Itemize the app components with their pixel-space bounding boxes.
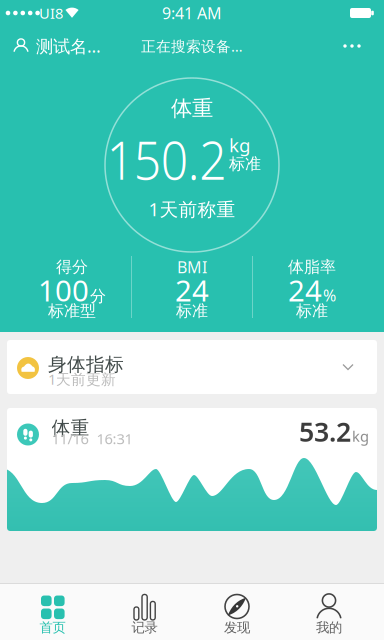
staticText: 24 <box>175 270 209 309</box>
button[interactable]: 发现 <box>191 584 283 640</box>
staticText: 标准型 <box>48 301 96 321</box>
staticText: 得分 <box>56 257 88 277</box>
button[interactable]: 用户 <box>13 34 123 57</box>
button[interactable]: 首页 <box>6 584 98 640</box>
staticText: 1天前称重 <box>148 197 235 221</box>
staticText: 标准 <box>296 301 328 321</box>
staticText: kg <box>352 426 369 446</box>
button[interactable]: 记录 <box>98 584 190 640</box>
staticText: 体重 <box>171 95 213 122</box>
staticText: 150.2 <box>100 124 233 194</box>
staticText: 首页 <box>39 619 65 636</box>
staticText: 9:41 AM <box>162 2 222 24</box>
staticText: 24 <box>288 270 322 309</box>
staticText: BMI <box>177 256 207 278</box>
staticText: 正在搜索设备… <box>141 36 243 56</box>
staticText: 记录 <box>131 619 157 636</box>
staticText: 标准 <box>176 301 208 321</box>
staticText: 体脂率 <box>288 257 336 277</box>
staticText: 53.2 <box>299 414 351 449</box>
staticText: 体重 <box>51 416 89 439</box>
staticText: kg <box>229 133 250 157</box>
button[interactable]: 体重 <box>7 408 377 531</box>
staticText: % <box>323 284 336 306</box>
staticText: 标准 <box>229 154 261 174</box>
staticText: 身体指标 <box>48 353 124 376</box>
staticText: UI8 <box>39 3 63 23</box>
staticText: 我的 <box>316 619 342 636</box>
staticText: 测试名… <box>36 34 101 57</box>
staticText: 1天前更新 <box>48 369 116 389</box>
staticText: 分 <box>90 286 106 306</box>
staticText: 100 <box>38 270 89 309</box>
button[interactable]: 更多 <box>335 36 369 56</box>
staticText: 11/16 16:31 <box>51 429 132 448</box>
button[interactable]: 身体指标 <box>7 340 377 394</box>
button[interactable]: 我的 <box>283 584 375 640</box>
staticText: 发现 <box>224 619 250 636</box>
